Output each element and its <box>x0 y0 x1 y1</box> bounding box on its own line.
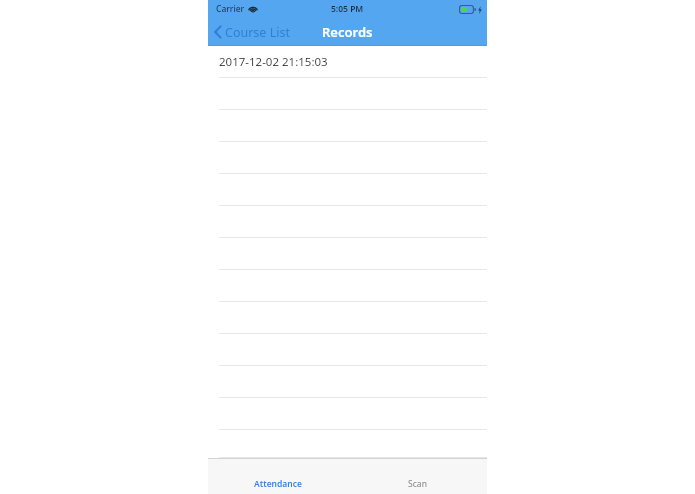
staticText: 2017-12-02 21:15:03 <box>219 54 328 70</box>
button[interactable]: 2017-12-02 21:15:03 <box>208 46 487 78</box>
staticText: 5:05 PM <box>331 3 364 15</box>
button[interactable]: Scan <box>347 459 487 494</box>
button[interactable]: Attendance <box>208 459 347 494</box>
button[interactable]: Course List <box>208 18 296 46</box>
staticText: Course List <box>225 24 290 41</box>
staticText: Scan <box>408 478 427 490</box>
staticText: Carrier <box>216 3 245 15</box>
staticText: Records <box>322 23 373 41</box>
staticText: Attendance <box>254 478 302 490</box>
